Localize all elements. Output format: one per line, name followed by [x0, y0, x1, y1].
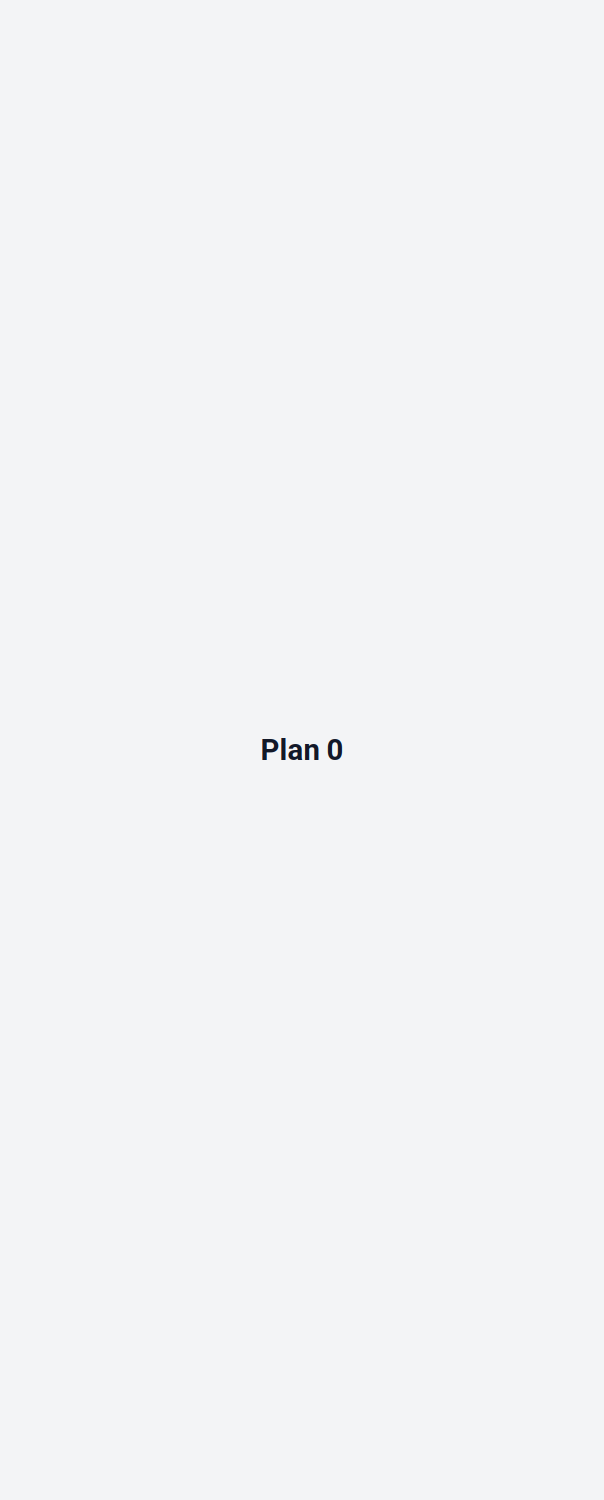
staticText: Plan 0 [260, 733, 343, 767]
